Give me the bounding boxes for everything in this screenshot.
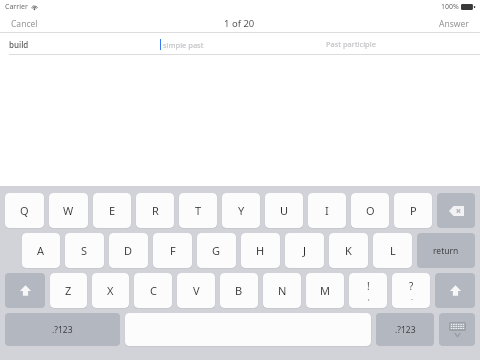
button[interactable]: D [109, 233, 148, 268]
button[interactable]: J [285, 233, 324, 268]
staticText: . [411, 293, 413, 303]
button[interactable]: return [417, 233, 475, 268]
button[interactable]: Z [50, 273, 87, 308]
staticText: W [63, 203, 74, 218]
staticText: B [235, 283, 243, 298]
staticText: U [280, 203, 289, 218]
staticText: Cancel [11, 18, 38, 30]
button[interactable]: B [220, 273, 258, 308]
staticText: .?123 [395, 324, 416, 336]
button[interactable]: L [373, 233, 412, 268]
button[interactable]: .?123 [376, 313, 434, 346]
button[interactable]: simple past [160, 33, 320, 55]
button[interactable]: Q [5, 193, 44, 228]
staticText: Past participle [326, 39, 376, 49]
staticText: D [124, 243, 133, 258]
button[interactable]: Hide keyboard [439, 313, 475, 346]
staticText: 100% [441, 2, 459, 12]
button[interactable]: Cancel [0, 14, 224, 33]
button[interactable]: Shift [5, 273, 45, 308]
button[interactable]: W [49, 193, 88, 228]
staticText: S [81, 243, 88, 258]
staticText: ! [367, 279, 370, 293]
button[interactable]: X [92, 273, 129, 308]
button[interactable]: Y [222, 193, 260, 228]
staticText: ? [409, 279, 414, 293]
staticText: V [193, 283, 200, 298]
button[interactable]: ! [349, 273, 387, 308]
button[interactable]: H [241, 233, 280, 268]
staticText: G [212, 243, 221, 258]
button[interactable]: Answer [255, 14, 480, 33]
staticText: , [368, 293, 370, 303]
staticText: F [170, 243, 176, 258]
staticText: I [325, 203, 329, 218]
button[interactable]: S [65, 233, 104, 268]
staticText: Q [20, 203, 29, 218]
button[interactable]: ? [392, 273, 430, 308]
staticText: N [278, 283, 287, 298]
staticText: P [410, 203, 417, 218]
button[interactable]: I [308, 193, 346, 228]
staticText: A [37, 243, 45, 258]
button[interactable]: N [263, 273, 301, 308]
staticText: Answer [439, 18, 469, 30]
button[interactable]: build [0, 33, 160, 55]
button[interactable]: P [394, 193, 432, 228]
button[interactable]: .?123 [5, 313, 120, 346]
staticText: O [366, 203, 375, 218]
staticText: M [320, 283, 330, 298]
button[interactable]: F [153, 233, 192, 268]
button[interactable]: K [329, 233, 368, 268]
button[interactable]: Shift [435, 273, 475, 308]
button[interactable]: E [93, 193, 131, 228]
staticText: Z [65, 283, 72, 298]
button[interactable]: G [197, 233, 236, 268]
button[interactable]: T [179, 193, 217, 228]
staticText: .?123 [52, 324, 73, 336]
staticText: return [433, 245, 459, 257]
button[interactable]: R [136, 193, 174, 228]
button[interactable]: Past participle [320, 33, 480, 55]
button[interactable]: C [134, 273, 172, 308]
button[interactable]: Backspace [437, 193, 475, 228]
staticText: E [109, 203, 116, 218]
button[interactable]: O [351, 193, 389, 228]
staticText: Carrier [5, 2, 28, 12]
staticText: simple past [163, 40, 204, 50]
staticText: H [256, 243, 265, 258]
staticText: R [152, 203, 159, 218]
staticText: build [9, 39, 29, 50]
staticText: K [345, 243, 352, 258]
staticText: C [150, 283, 157, 298]
button[interactable]: V [177, 273, 215, 308]
staticText: Y [238, 203, 245, 218]
staticText: 1 of 20 [224, 17, 255, 30]
staticText: T [195, 203, 202, 218]
button[interactable]: M [306, 273, 344, 308]
button[interactable]: U [265, 193, 303, 228]
button[interactable]: A [22, 233, 60, 268]
staticText: J [303, 243, 307, 258]
staticText: L [390, 243, 396, 258]
staticText: X [107, 283, 114, 298]
